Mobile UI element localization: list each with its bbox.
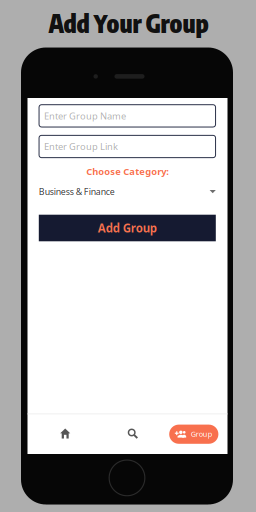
staticText: Business & Finance (39, 186, 115, 198)
staticText: Add Group (98, 220, 157, 236)
staticText: Choose Category: (86, 165, 169, 178)
staticText: Group (145, 8, 208, 38)
staticText: Enter Group Link (44, 140, 118, 153)
button[interactable]: Group (169, 425, 218, 444)
button[interactable]: Search (116, 417, 150, 449)
staticText: Group (191, 429, 213, 439)
button[interactable]: Home (48, 417, 82, 449)
staticText: Your (93, 8, 141, 38)
button[interactable]: Add Group (39, 215, 216, 241)
staticText: Enter Group Name (44, 109, 126, 122)
staticText: Add (48, 8, 89, 38)
button[interactable]: Business & Finance (39, 183, 216, 200)
